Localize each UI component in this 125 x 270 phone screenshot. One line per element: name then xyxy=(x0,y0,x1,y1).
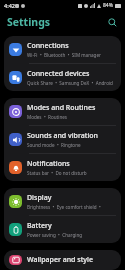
staticText: 4:42 xyxy=(4,2,15,9)
staticText: Modes and Routines xyxy=(27,103,96,113)
staticText: Wallpaper and style xyxy=(27,255,93,265)
button[interactable]: Sounds and vibration xyxy=(4,126,121,153)
staticText: Battery xyxy=(27,221,52,231)
button[interactable]: Modes and Routines xyxy=(4,98,121,125)
staticText: Notifications xyxy=(27,159,70,169)
staticText: Display xyxy=(27,193,52,203)
staticText: Status bar • Do not disturb xyxy=(27,170,87,176)
staticText: 84% xyxy=(103,2,113,9)
staticText: Wi-Fi • Bluetooth • SIM manager xyxy=(27,52,101,58)
button[interactable]: Display xyxy=(4,188,121,215)
button[interactable]: Connected devices xyxy=(4,64,121,91)
staticText: Brightness • Eye comfort shield • Naviga… xyxy=(27,204,116,210)
button[interactable]: Search xyxy=(104,14,120,30)
staticText: Connections xyxy=(27,41,69,51)
button[interactable]: Connections xyxy=(4,36,121,63)
staticText: Connected devices xyxy=(27,69,90,79)
staticText: Sound mode • Ringtone xyxy=(27,142,81,148)
staticText: Settings xyxy=(7,15,51,29)
staticText: Sounds and vibration xyxy=(27,131,99,141)
button[interactable]: Wallpaper and style xyxy=(4,250,121,270)
button[interactable]: Battery xyxy=(4,216,121,243)
button[interactable]: Notifications xyxy=(4,154,121,181)
staticText: Power saving • Charging xyxy=(27,232,83,238)
staticText: Modes • Routines xyxy=(27,114,68,120)
staticText: Quick Share • Samsung DeX • Android Auto xyxy=(27,80,116,86)
